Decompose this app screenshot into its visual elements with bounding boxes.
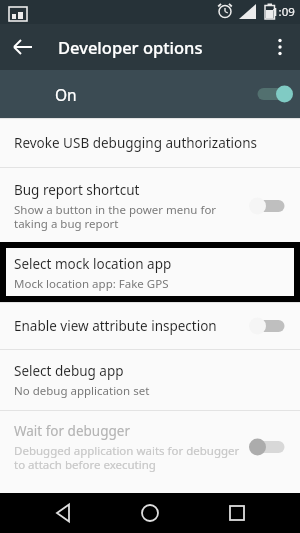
staticText: Debugged application waits for debugger … [14, 443, 240, 472]
button[interactable]: Recent apps [214, 493, 260, 533]
button[interactable]: On [0, 70, 300, 118]
staticText: Wait for debugger [14, 422, 130, 440]
button[interactable]: Back [0, 24, 46, 70]
staticText: No debug application set [14, 383, 150, 399]
staticText: On [55, 84, 77, 105]
staticText: Mock location app: Fake GPS [14, 276, 169, 292]
staticText: 1:09 [272, 4, 295, 20]
button[interactable]: Wait for debugger [0, 411, 300, 483]
button[interactable]: Home [127, 493, 173, 533]
staticText: Show a button in the power menu for taki… [14, 202, 217, 231]
button[interactable]: Bug report shortcut [0, 168, 300, 244]
staticText: Select debug app [14, 362, 124, 380]
staticText: Developer options [58, 36, 203, 58]
button[interactable]: Enable view attribute inspection [0, 303, 300, 349]
button[interactable]: Revoke USB debugging authorizations [0, 119, 300, 167]
button[interactable]: Select debug app [0, 350, 300, 410]
staticText: Bug report shortcut [14, 181, 140, 199]
button[interactable]: Back [41, 493, 87, 533]
staticText: Select mock location app [14, 255, 172, 273]
staticText: Enable view attribute inspection [14, 317, 217, 335]
staticText: Revoke USB debugging authorizations [14, 134, 258, 152]
button[interactable]: More options [254, 24, 300, 70]
